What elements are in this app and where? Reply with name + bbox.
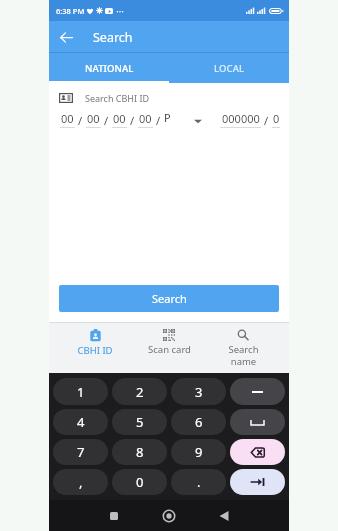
button[interactable]: Search name [206,323,280,373]
staticText: 6 [195,413,203,431]
staticText: 5 [136,413,144,431]
staticText: 00 [61,111,74,126]
staticText: 1 [77,383,85,401]
button[interactable]: Back [213,505,235,527]
button[interactable]: 3 [171,378,226,405]
staticText: 0 [273,111,280,126]
staticText: 4 [77,413,85,431]
button[interactable]: Space [230,409,285,435]
staticText: 6:38 PM [56,6,85,16]
button[interactable]: 7 [53,439,108,465]
staticText: 00 [113,111,126,126]
button[interactable]: Back [53,24,79,50]
staticText: / [156,113,161,128]
button[interactable]: Home [158,505,180,527]
staticText: Search name [228,343,259,367]
staticText: 00 [87,111,100,126]
staticText: / [78,113,83,128]
staticText: / [264,113,269,128]
staticText: NATIONAL [85,62,134,75]
button[interactable]: Backspace [230,439,285,465]
button[interactable]: CBHI ID [58,323,132,373]
button[interactable]: 6 [171,409,226,435]
button[interactable]: Enter [230,469,285,495]
staticText: . [197,473,201,491]
staticText: / [130,113,135,128]
staticText: LOCAL [214,62,245,75]
staticText: Search [93,29,133,46]
button[interactable]: LOCAL [169,53,289,83]
button[interactable]: 2 [112,378,167,405]
staticText: 000000 [222,111,260,126]
staticText: Scan card [148,343,191,356]
button[interactable]: , [53,469,108,495]
button[interactable]: 8 [112,439,167,465]
staticText: 00 [139,111,152,126]
button[interactable]: 5 [112,409,167,435]
button[interactable]: Search [59,285,279,312]
staticText: 9 [195,443,203,461]
button[interactable]: 9 [171,439,226,465]
staticText: 3 [195,383,203,401]
button[interactable]: Recents [103,505,125,527]
staticText: 0 [136,473,144,491]
staticText: P [164,110,171,125]
button[interactable]: 4 [53,409,108,435]
button[interactable]: Dash [230,378,285,405]
staticText: Search CBHI ID [85,92,150,104]
staticText: Search [152,291,187,306]
staticText: CBHI ID [77,344,113,357]
button[interactable]: . [171,469,226,495]
button[interactable]: 0 [112,469,167,495]
staticText: 8 [136,443,144,461]
button[interactable]: NATIONAL [49,53,169,83]
button[interactable]: 1 [53,378,108,405]
staticText: , [79,473,83,491]
staticText: / [104,113,109,128]
staticText: 7 [77,443,85,461]
staticText: 2 [136,383,144,401]
button[interactable]: Scan card [132,323,206,373]
